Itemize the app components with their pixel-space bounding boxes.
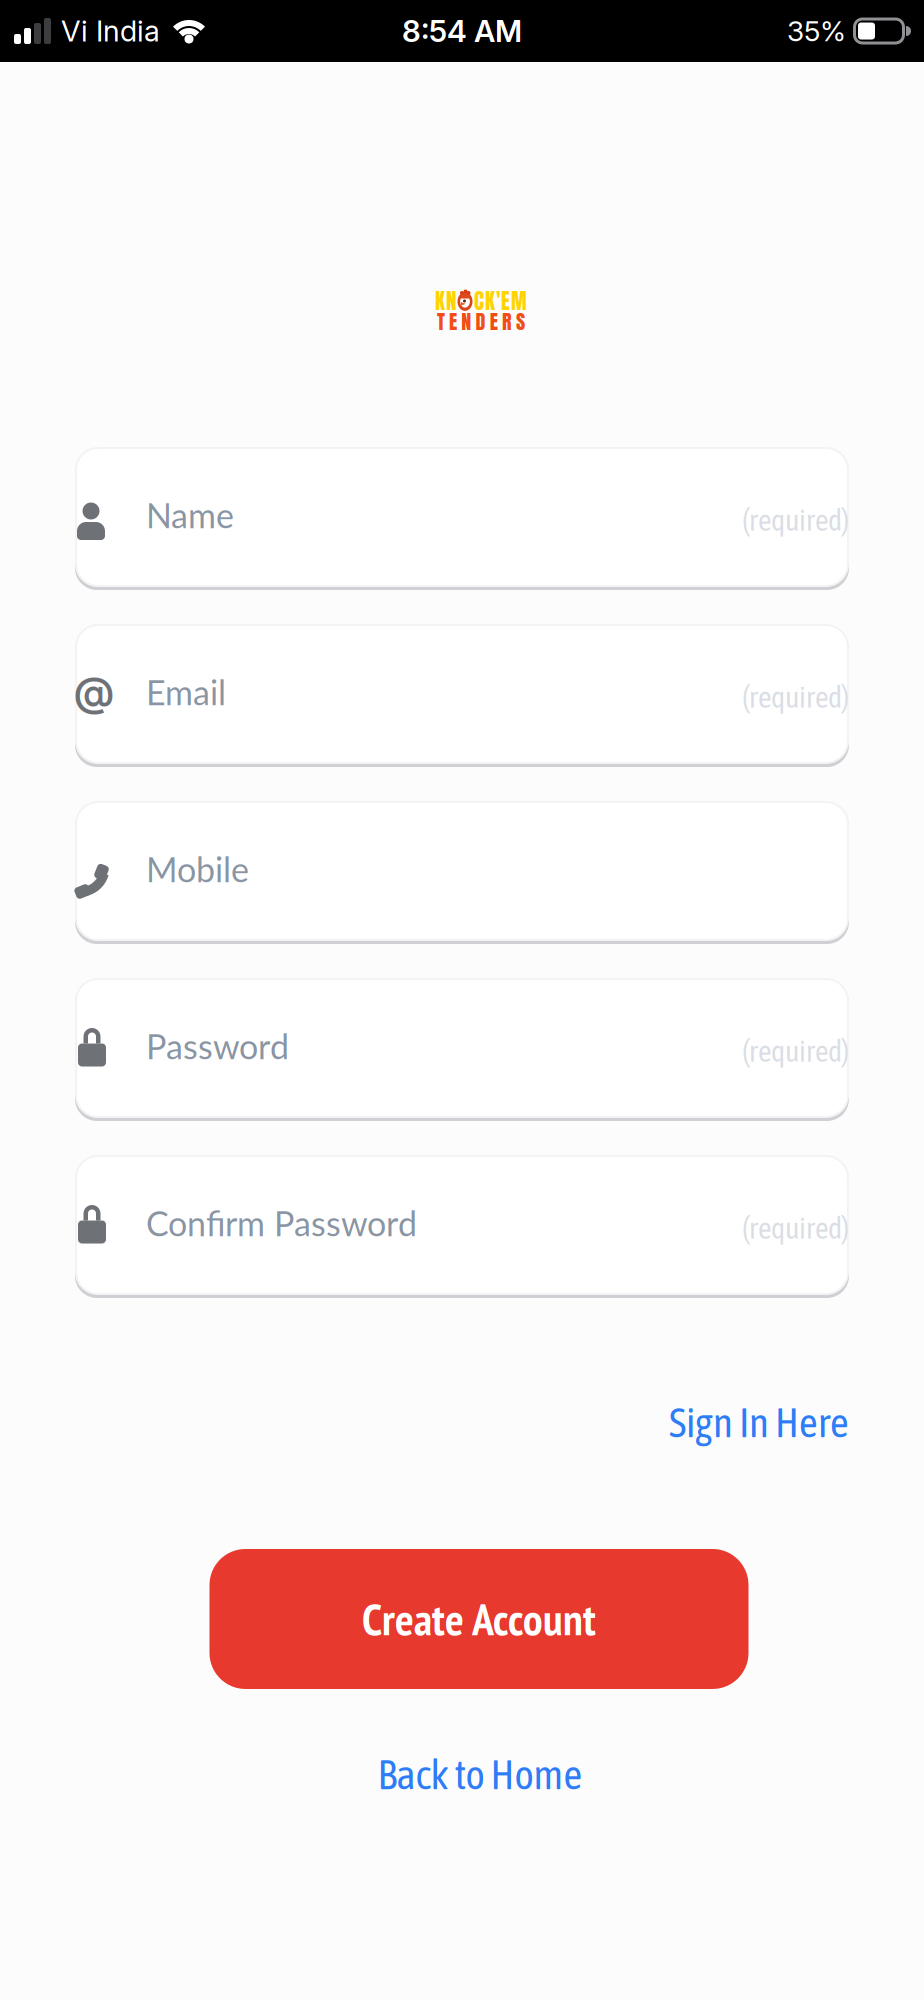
staticText: D: [475, 306, 485, 336]
staticText: E: [449, 306, 457, 336]
staticText: K: [485, 285, 495, 317]
staticText: E: [501, 285, 510, 317]
button[interactable]: @: [75, 624, 849, 764]
staticText: Email: [146, 672, 226, 712]
staticText: Back to Home: [377, 1751, 582, 1798]
button[interactable]: Back to Home: [377, 1751, 582, 1798]
staticText: K: [435, 285, 445, 317]
staticText: S: [516, 306, 525, 336]
staticText: M: [511, 285, 527, 317]
staticText: Name: [146, 495, 234, 535]
staticText: Confirm Password: [146, 1203, 417, 1243]
button[interactable]: Confirm Password: [75, 1155, 849, 1295]
staticText: ': [496, 285, 500, 317]
staticText: (required): [742, 503, 849, 537]
staticText: @: [74, 668, 114, 716]
staticText: 35%: [787, 14, 846, 48]
staticText: C: [474, 285, 484, 317]
staticText: Sign In Here: [669, 1399, 849, 1446]
staticText: N: [446, 285, 456, 317]
staticText: 8:54 AM: [402, 13, 522, 49]
button[interactable]: Password: [75, 978, 849, 1118]
button[interactable]: Name: [75, 447, 849, 587]
staticText: T: [437, 306, 445, 336]
staticText: (required): [742, 1034, 849, 1068]
button[interactable]: Mobile: [75, 801, 849, 941]
button[interactable]: Sign In Here: [669, 1399, 849, 1446]
staticText: (required): [742, 680, 849, 714]
staticText: Vi India: [61, 13, 160, 49]
staticText: N: [461, 306, 471, 336]
button[interactable]: Create Account: [209, 1549, 748, 1689]
staticText: Create Account: [362, 1590, 596, 1647]
staticText: (required): [742, 1211, 849, 1245]
staticText: E: [490, 306, 498, 336]
staticText: Mobile: [146, 849, 249, 889]
staticText: Password: [146, 1026, 289, 1066]
staticText: R: [502, 306, 512, 336]
